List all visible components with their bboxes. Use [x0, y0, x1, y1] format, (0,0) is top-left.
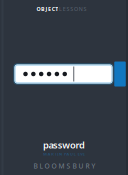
staticText: LESSONS — [59, 5, 86, 13]
staticText: OBJECT — [36, 5, 58, 13]
staticText: BLOOMSBURY — [33, 162, 95, 170]
staticText: password — [43, 139, 85, 151]
staticText: MARTIN PAUL EVE — [43, 151, 85, 157]
